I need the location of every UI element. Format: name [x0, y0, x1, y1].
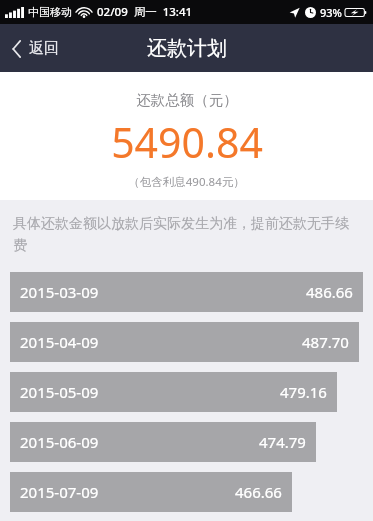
- staticText: 479.16: [280, 382, 327, 402]
- staticText: 487.70: [302, 332, 349, 352]
- other: Back: [12, 40, 22, 58]
- staticText: 还款计划: [147, 36, 227, 61]
- staticText: 返回: [29, 39, 59, 58]
- staticText: （包含利息490.84元）: [128, 174, 245, 190]
- staticText: 93%: [320, 5, 342, 20]
- button[interactable]: 2015-04-09: [10, 322, 359, 362]
- staticText: 具体还款金额以放款后实际发生为准，提前还款无手续费: [13, 215, 357, 255]
- staticText: 466.66: [235, 482, 282, 502]
- staticText: 474.79: [259, 432, 306, 452]
- staticText: 2015-07-09: [20, 482, 99, 502]
- staticText: 2015-06-09: [20, 432, 99, 452]
- button[interactable]: 2015-07-09: [10, 472, 292, 512]
- staticText: 还款总额（元）: [136, 91, 238, 109]
- staticText: 2015-04-09: [20, 332, 99, 352]
- staticText: 486.66: [306, 282, 353, 302]
- button[interactable]: 2015-05-09: [10, 372, 337, 412]
- staticText: 中国移动: [28, 5, 72, 19]
- button[interactable]: 2015-06-09: [10, 422, 316, 462]
- button[interactable]: 2015-03-09: [10, 272, 363, 312]
- staticText: 02/09 周一 13:41: [97, 4, 193, 20]
- staticText: 2015-03-09: [20, 282, 99, 302]
- staticText: 2015-05-09: [20, 382, 99, 402]
- button[interactable]: Back: [0, 31, 73, 66]
- staticText: 5490.84: [111, 114, 263, 170]
